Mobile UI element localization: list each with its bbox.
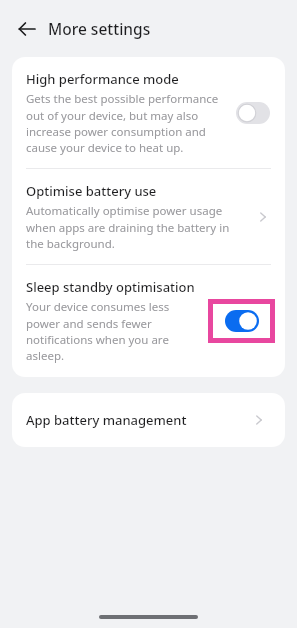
button[interactable]: Sleep standby optimisation <box>12 265 285 377</box>
button[interactable]: High performance mode <box>12 57 285 168</box>
staticText: High performance mode <box>26 70 179 88</box>
staticText: Automatically optimise power usage when … <box>26 203 245 251</box>
button[interactable]: Sleep standby optimisation toggle on <box>208 299 275 343</box>
staticText: App battery management <box>26 411 247 429</box>
other: Open <box>251 205 275 229</box>
button[interactable]: App battery management <box>12 393 285 447</box>
button[interactable]: Back <box>10 12 43 45</box>
staticText: Gets the best possible performance out o… <box>26 91 225 155</box>
button[interactable]: Optimise battery use <box>12 169 285 264</box>
button[interactable]: Toggle off <box>231 98 275 128</box>
other: Open <box>247 408 271 432</box>
staticText: Sleep standby optimisation <box>26 278 195 296</box>
staticText: Optimise battery use <box>26 182 157 200</box>
staticText: More settings <box>48 18 151 39</box>
staticText: Your device consumes less power and send… <box>26 299 202 363</box>
